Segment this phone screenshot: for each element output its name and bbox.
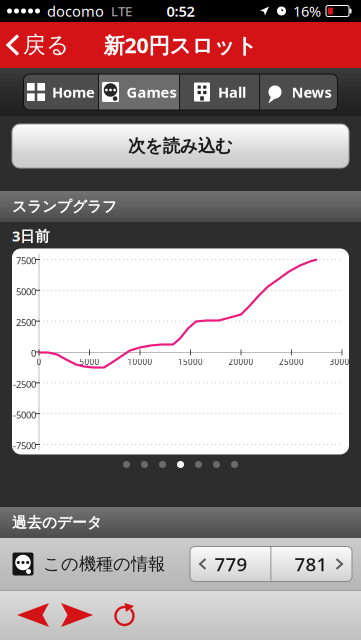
button[interactable]: Games — [99, 74, 179, 110]
button[interactable]: Reload — [103, 590, 147, 640]
staticText: 0 — [36, 356, 41, 367]
button[interactable]: 779 — [190, 546, 270, 581]
button[interactable]: Hall — [180, 74, 259, 110]
staticText: 16% — [293, 1, 321, 21]
staticText: 0:52 — [166, 1, 194, 21]
button[interactable]: Forward — [55, 590, 99, 640]
staticText: Hall — [218, 82, 246, 102]
button[interactable]: 戻る — [0, 23, 75, 67]
staticText: 25000 — [279, 356, 304, 367]
staticText: -2500 — [13, 378, 36, 390]
staticText: 7500 — [16, 254, 36, 267]
staticText: 10000 — [127, 356, 152, 367]
staticText: 0 — [31, 347, 36, 359]
button[interactable]: News — [260, 74, 337, 110]
staticText: この機種の情報 — [43, 553, 165, 575]
staticText: 20000 — [228, 356, 253, 367]
staticText: -7500 — [13, 439, 36, 452]
staticText: 30000 — [329, 356, 354, 367]
staticText: 2500 — [16, 316, 36, 328]
staticText: 3日前 — [12, 226, 50, 245]
staticText: 5000 — [79, 356, 99, 367]
staticText: 779 — [214, 552, 247, 576]
button[interactable]: Back — [11, 590, 55, 640]
staticText: 新20円スロット — [103, 31, 257, 59]
staticText: 次を読み込む — [128, 135, 233, 157]
staticText: 戻る — [23, 31, 69, 59]
button[interactable]: Home — [24, 74, 98, 110]
staticText: Home — [52, 82, 95, 102]
staticText: News — [291, 82, 331, 102]
button[interactable]: この機種の情報 — [0, 538, 190, 590]
staticText: docomo — [47, 1, 104, 21]
staticText: 過去のデータ — [12, 513, 102, 531]
button[interactable]: 次を読み込む — [0, 124, 361, 168]
staticText: スランプグラフ — [12, 197, 117, 215]
staticText: 5000 — [16, 285, 36, 298]
staticText: Games — [126, 82, 176, 102]
staticText: -5000 — [13, 409, 36, 421]
button[interactable]: 781 — [271, 546, 352, 581]
staticText: 15000 — [178, 356, 203, 367]
staticText: 781 — [294, 552, 327, 576]
staticText: LTE — [111, 2, 132, 20]
